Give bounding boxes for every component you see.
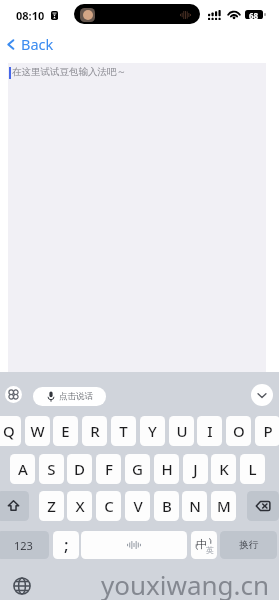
- button[interactable]: S: [39, 454, 64, 484]
- staticText: 123: [14, 538, 33, 553]
- staticText: C: [104, 496, 114, 516]
- button[interactable]: B: [154, 491, 179, 521]
- button[interactable]: Y: [140, 416, 165, 446]
- button[interactable]: M: [211, 491, 236, 521]
- staticText: 在这里试试豆包输入法吧～: [12, 66, 126, 78]
- button[interactable]: V: [125, 491, 150, 521]
- staticText: S: [47, 459, 56, 479]
- staticText: Y: [148, 421, 157, 441]
- button[interactable]: 123: [0, 531, 49, 559]
- button[interactable]: 中: [191, 531, 217, 559]
- button[interactable]: W: [25, 416, 50, 446]
- button[interactable]: Back: [4, 33, 54, 55]
- staticText: X: [75, 496, 85, 516]
- button[interactable]: U: [169, 416, 194, 446]
- staticText: Back: [21, 34, 54, 54]
- staticText: F: [105, 459, 113, 479]
- button[interactable]: Z: [39, 491, 64, 521]
- staticText: 点击说话: [59, 391, 93, 402]
- staticText: H: [161, 459, 173, 479]
- staticText: M: [217, 496, 231, 516]
- staticText: 英: [206, 545, 214, 555]
- staticText: D: [74, 459, 85, 479]
- staticText: Z: [47, 496, 56, 516]
- button[interactable]: [81, 531, 187, 559]
- staticText: youxiwang.cn: [101, 567, 270, 600]
- staticText: R: [90, 421, 100, 441]
- button[interactable]: D: [67, 454, 92, 484]
- button[interactable]: H: [154, 454, 179, 484]
- button[interactable]: J: [183, 454, 208, 484]
- button[interactable]: Q: [0, 416, 21, 446]
- staticText: W: [30, 421, 45, 441]
- staticText: 08:10: [16, 8, 45, 23]
- button[interactable]: P: [255, 416, 279, 446]
- staticText: Q: [3, 421, 15, 441]
- button[interactable]: Keyboard panels: [5, 386, 22, 403]
- staticText: P: [263, 421, 273, 441]
- button[interactable]: Switch input language: [13, 577, 31, 595]
- button[interactable]: ;: [53, 531, 79, 559]
- button[interactable]: G: [125, 454, 150, 484]
- button[interactable]: I: [197, 416, 222, 446]
- staticText: 中: [196, 537, 207, 551]
- staticText: I: [207, 421, 213, 441]
- button[interactable]: T: [111, 416, 136, 446]
- button[interactable]: O: [226, 416, 251, 446]
- button[interactable]: 点击说话: [33, 387, 106, 406]
- staticText: ;: [64, 533, 69, 556]
- staticText: A: [18, 459, 28, 479]
- button[interactable]: N: [182, 491, 207, 521]
- button[interactable]: Backspace: [247, 491, 279, 521]
- button[interactable]: Shift: [0, 491, 29, 521]
- staticText: 68: [249, 10, 259, 19]
- button[interactable]: A: [10, 454, 35, 484]
- staticText: J: [193, 459, 198, 479]
- button[interactable]: Hide keyboard: [251, 384, 273, 406]
- staticText: B: [162, 496, 172, 516]
- staticText: O: [233, 421, 245, 441]
- button[interactable]: K: [211, 454, 236, 484]
- staticText: K: [219, 459, 229, 479]
- staticText: T: [119, 421, 128, 441]
- button[interactable]: R: [82, 416, 107, 446]
- button[interactable]: E: [53, 416, 78, 446]
- staticText: V: [133, 496, 143, 516]
- staticText: U: [176, 421, 188, 441]
- staticText: 换行: [239, 539, 258, 551]
- staticText: G: [132, 459, 143, 479]
- button[interactable]: F: [96, 454, 121, 484]
- staticText: N: [189, 496, 201, 516]
- staticText: L: [248, 459, 257, 479]
- button[interactable]: 换行: [220, 531, 277, 559]
- button[interactable]: C: [96, 491, 121, 521]
- staticText: E: [61, 421, 70, 441]
- button[interactable]: X: [67, 491, 92, 521]
- button[interactable]: L: [240, 454, 265, 484]
